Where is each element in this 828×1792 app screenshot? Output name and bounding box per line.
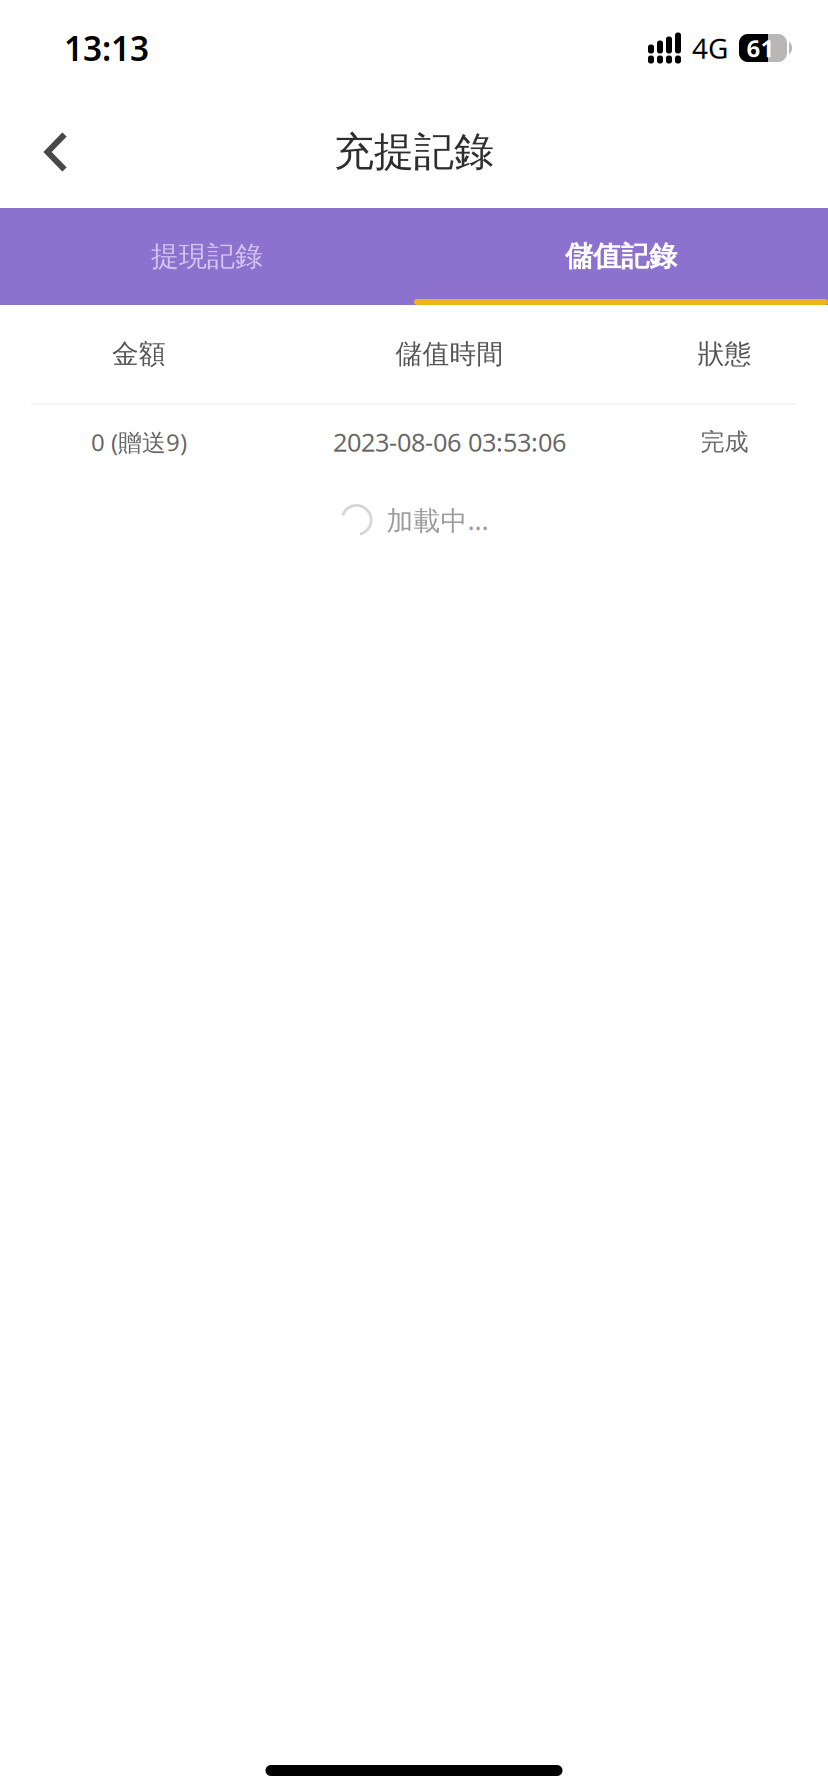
staticText: 提現記錄 [151, 239, 263, 274]
staticText: 加載中... [386, 502, 488, 538]
staticText: 61 [746, 32, 774, 64]
staticText: 0 (贈送9) [91, 426, 187, 458]
staticText: 2023-08-06 03:53:06 [333, 425, 566, 459]
staticText: 狀態 [697, 338, 751, 370]
staticText: 4G [692, 29, 728, 67]
button[interactable]: 儲值記錄 [414, 208, 828, 305]
staticText: 金額 [112, 338, 166, 370]
staticText: 儲值時間 [395, 338, 503, 370]
staticText: 完成 [700, 427, 748, 457]
button[interactable]: 0 (贈送9) [0, 405, 828, 479]
staticText: 充提記錄 [334, 127, 494, 176]
staticText: 13:13 [64, 26, 149, 70]
button[interactable]: 提現記錄 [0, 208, 414, 305]
button[interactable]: Back [14, 110, 98, 194]
staticText: 儲值記錄 [565, 239, 677, 274]
